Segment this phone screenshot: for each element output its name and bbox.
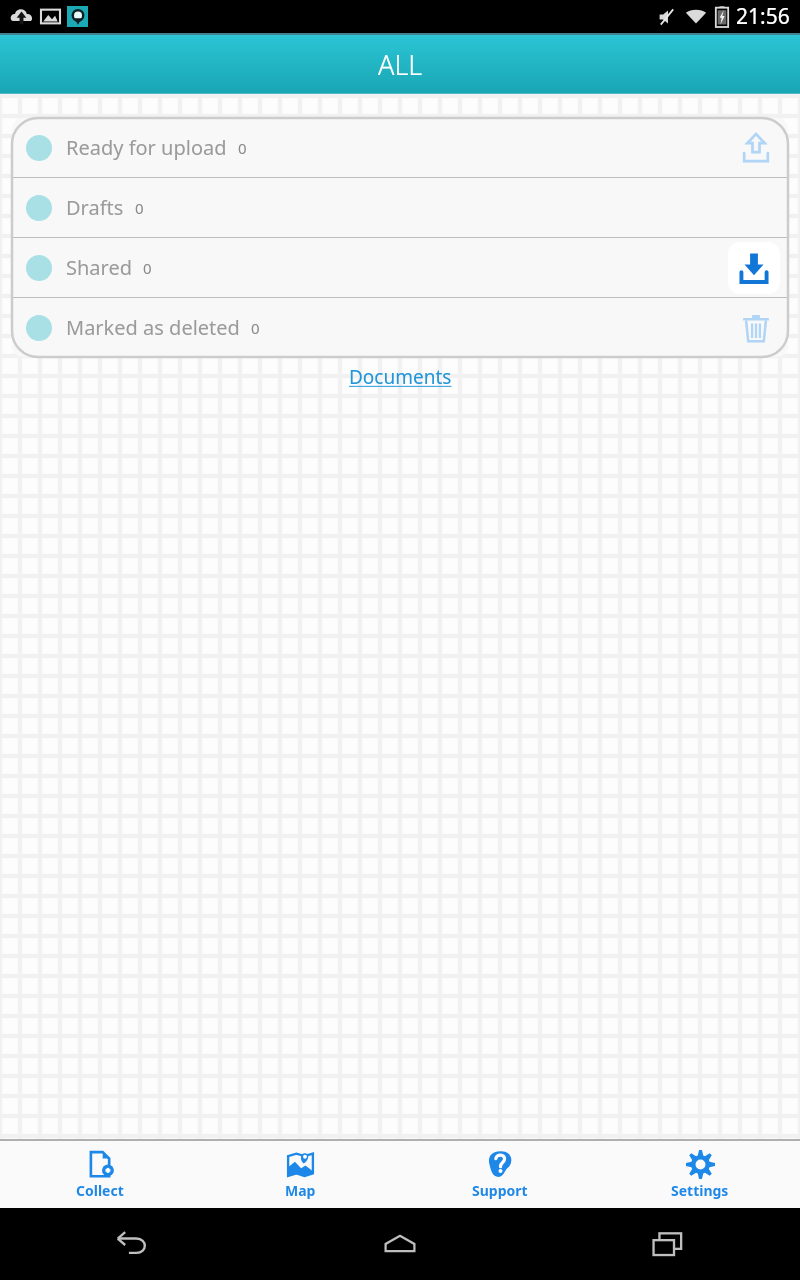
staticText: Ready for upload [66, 134, 227, 161]
button[interactable]: Collect [0, 1141, 200, 1208]
button[interactable]: Documents [343, 362, 458, 392]
staticText: ALL [378, 46, 423, 83]
button[interactable]: Ready for upload [12, 118, 788, 177]
button[interactable]: Recents [644, 1221, 690, 1267]
staticText: Collect [76, 1181, 124, 1200]
staticText: 0 [143, 258, 152, 278]
button[interactable]: Home [377, 1221, 423, 1267]
staticText: Support [472, 1181, 528, 1200]
button[interactable]: Support [400, 1141, 600, 1208]
button[interactable]: Download [728, 242, 780, 294]
button[interactable]: Marked as deleted [12, 298, 788, 357]
button[interactable]: Shared [12, 238, 788, 297]
staticText: 0 [251, 318, 260, 338]
staticText: Shared [66, 254, 132, 281]
button[interactable]: Back [110, 1221, 156, 1267]
staticText: Map [285, 1181, 316, 1200]
staticText: Marked as deleted [66, 314, 240, 341]
button[interactable]: Map [200, 1141, 400, 1208]
button[interactable]: Settings [600, 1141, 800, 1208]
button[interactable]: Drafts [12, 178, 788, 237]
button[interactable]: Upload [732, 124, 780, 172]
button[interactable]: Delete [732, 304, 780, 352]
staticText: Settings [671, 1181, 729, 1200]
staticText: Drafts [66, 194, 124, 221]
staticText: 0 [135, 198, 144, 218]
staticText: 21:56 [736, 2, 790, 31]
staticText: 0 [238, 138, 247, 158]
